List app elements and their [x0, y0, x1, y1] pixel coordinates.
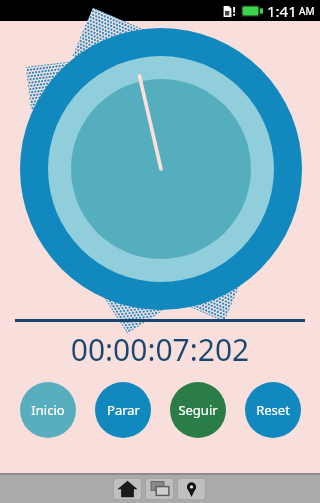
button[interactable]: Recent apps [145, 478, 174, 500]
staticText: 1:41 [267, 1, 297, 21]
button[interactable]: Location [177, 478, 206, 500]
staticText: Seguir [178, 401, 218, 419]
staticText: Inicio [31, 401, 65, 419]
button[interactable]: Home [113, 478, 142, 500]
staticText: AM [299, 4, 315, 18]
button[interactable]: Parar [95, 382, 151, 438]
staticText: Reset [256, 401, 290, 419]
button[interactable]: Seguir [170, 382, 226, 438]
staticText: Parar [107, 401, 140, 419]
staticText: 00:00:07:202 [0, 329, 320, 370]
button[interactable]: Inicio [20, 382, 76, 438]
button[interactable]: Reset [245, 382, 301, 438]
